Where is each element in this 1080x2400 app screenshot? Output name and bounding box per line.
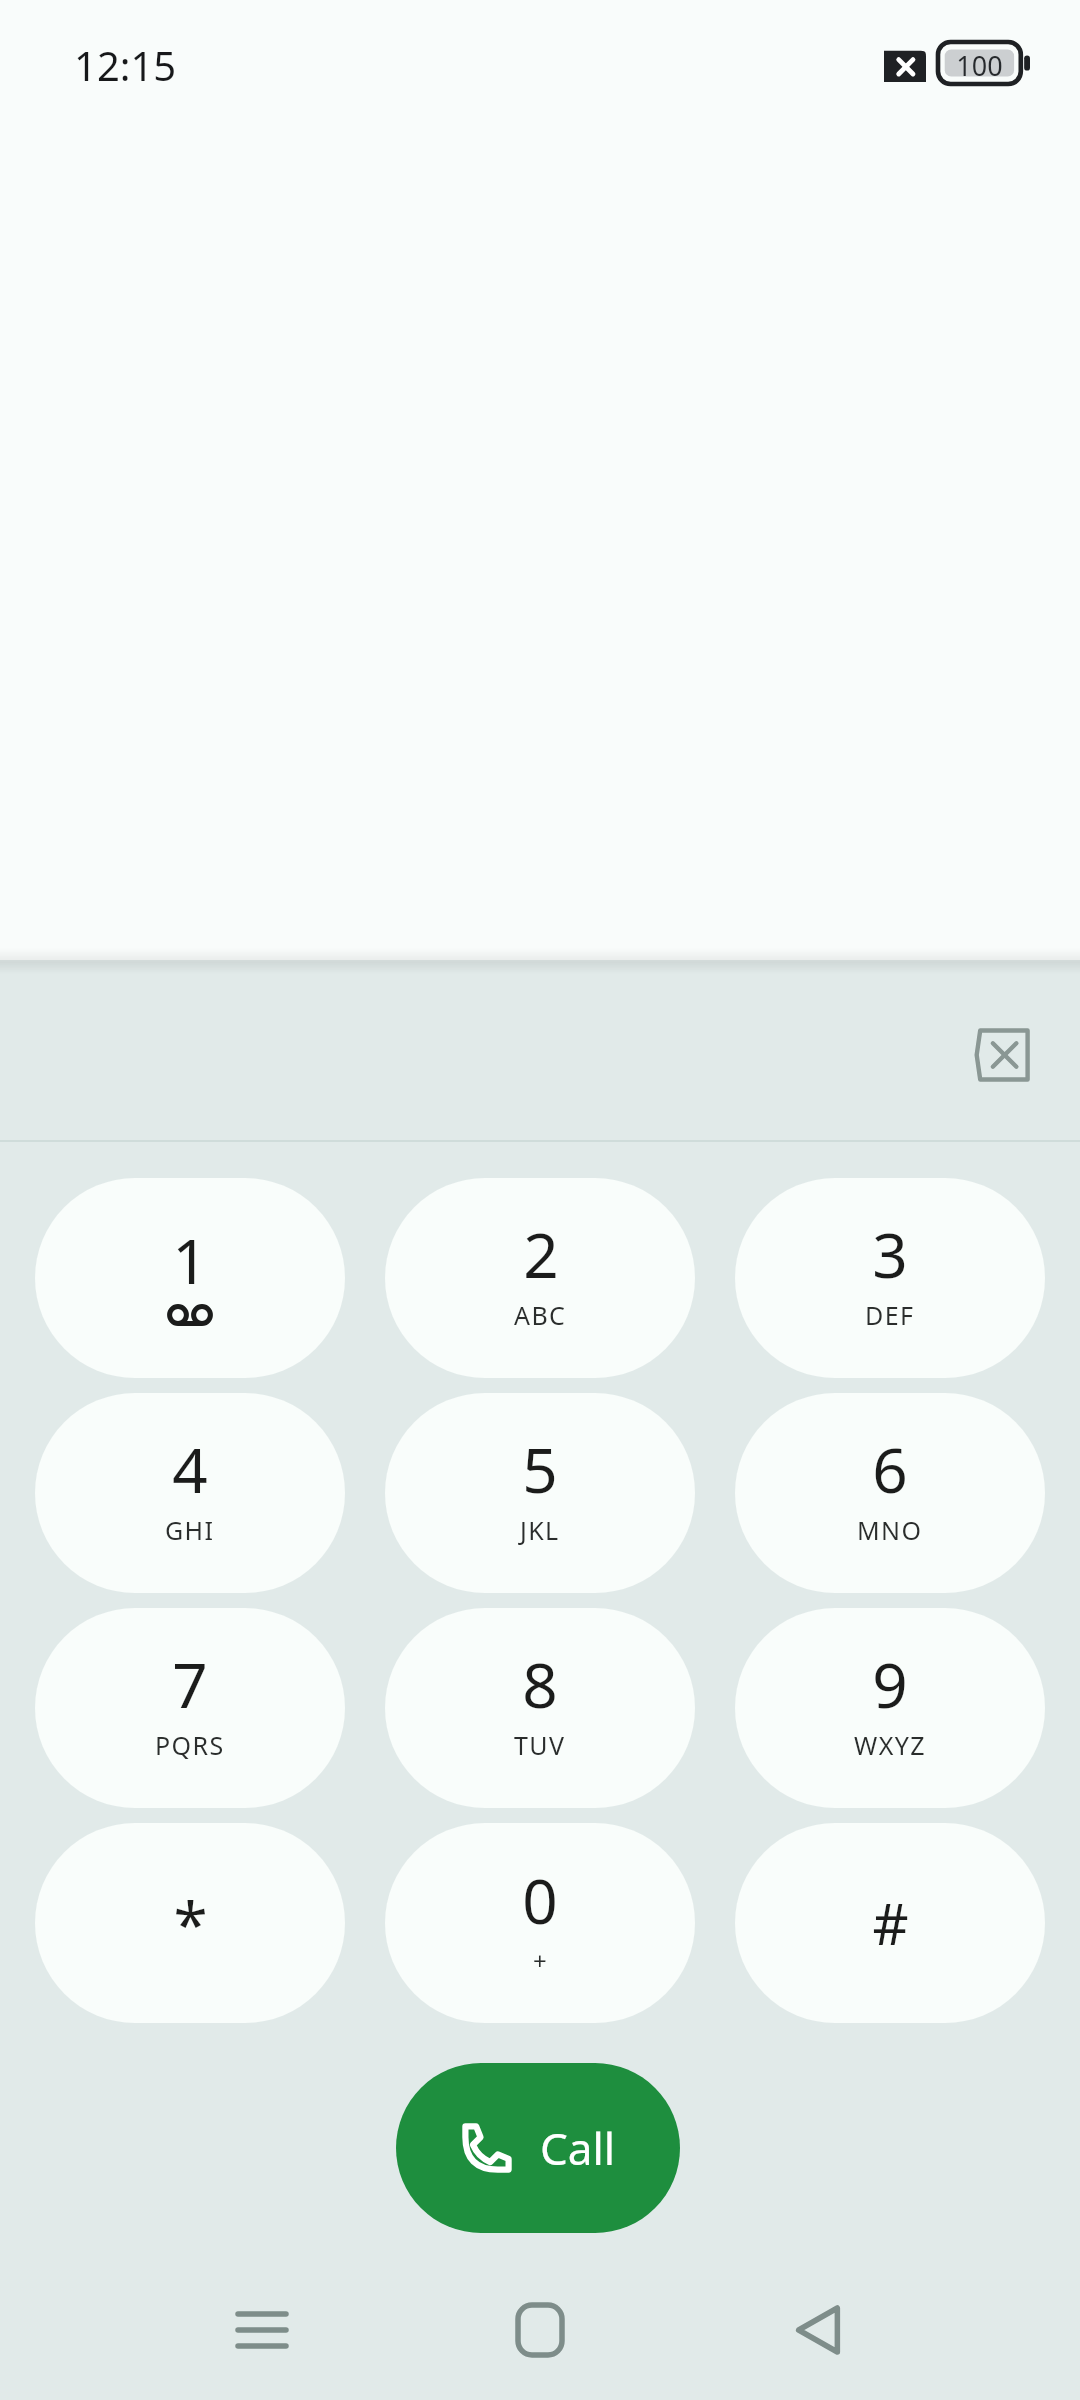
staticText: 7 bbox=[172, 1642, 208, 1726]
button[interactable]: 5 bbox=[385, 1393, 695, 1593]
button[interactable]: 4 bbox=[35, 1393, 345, 1593]
staticText: + bbox=[533, 1944, 547, 1977]
staticText: GHI bbox=[165, 1513, 215, 1547]
staticText: 0 bbox=[522, 1858, 558, 1942]
button[interactable]: # bbox=[735, 1823, 1045, 2023]
staticText: WXYZ bbox=[854, 1728, 926, 1762]
staticText: 6 bbox=[872, 1427, 908, 1511]
button[interactable]: 6 bbox=[735, 1393, 1045, 1593]
staticText: 9 bbox=[872, 1642, 908, 1726]
staticText: MNO bbox=[857, 1513, 923, 1547]
button[interactable]: Back bbox=[768, 2280, 868, 2380]
other: Call bbox=[460, 2121, 514, 2175]
staticText: ABC bbox=[514, 1298, 567, 1332]
button[interactable]: Call bbox=[396, 2063, 680, 2233]
button[interactable]: 1 bbox=[35, 1178, 345, 1378]
button[interactable]: Recents bbox=[212, 2280, 312, 2380]
button[interactable]: 3 bbox=[735, 1178, 1045, 1378]
staticText: DEF bbox=[865, 1298, 915, 1332]
button[interactable]: 0 bbox=[385, 1823, 695, 2023]
button[interactable]: 8 bbox=[385, 1608, 695, 1808]
staticText: PQRS bbox=[155, 1728, 225, 1762]
staticText: 3 bbox=[872, 1212, 908, 1296]
button[interactable]: * bbox=[35, 1823, 345, 2023]
staticText: 8 bbox=[522, 1642, 558, 1726]
staticText: 100 bbox=[938, 47, 1021, 84]
button[interactable]: 9 bbox=[735, 1608, 1045, 1808]
staticText: # bbox=[872, 1885, 909, 1961]
staticText: 2 bbox=[523, 1212, 559, 1296]
button[interactable]: Home bbox=[490, 2280, 590, 2380]
staticText: JKL bbox=[520, 1513, 560, 1547]
button[interactable]: Backspace bbox=[930, 990, 1060, 1120]
button[interactable]: 7 bbox=[35, 1608, 345, 1808]
staticText: 12:15 bbox=[74, 38, 177, 92]
staticText: 1 bbox=[172, 1218, 208, 1302]
staticText: * bbox=[173, 1881, 208, 1965]
staticText: TUV bbox=[514, 1728, 566, 1762]
staticText: Call bbox=[540, 2118, 616, 2178]
staticText: 4 bbox=[172, 1427, 208, 1511]
staticText: 5 bbox=[522, 1427, 558, 1511]
button[interactable]: 2 bbox=[385, 1178, 695, 1378]
